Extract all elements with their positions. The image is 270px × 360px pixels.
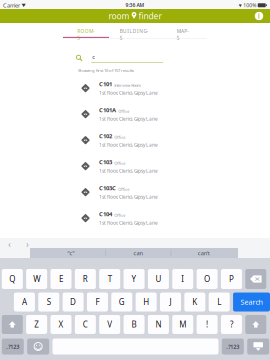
button[interactable]: I — [172, 269, 193, 289]
staticText: A — [22, 297, 27, 307]
staticText: R — [83, 274, 88, 284]
staticText: C102 — [99, 132, 112, 140]
staticText: Showing first 10 of 157 results — [78, 67, 134, 73]
button[interactable]: K — [184, 292, 205, 311]
staticText: 9:36 AM — [125, 2, 144, 9]
button[interactable]: V — [99, 315, 120, 334]
button[interactable]: Search — [233, 292, 270, 311]
staticText: C101A — [99, 106, 116, 114]
button[interactable]: Emoji — [27, 338, 49, 354]
button[interactable]: N — [148, 315, 169, 334]
staticText: C103 — [99, 158, 112, 166]
button[interactable]: X — [50, 315, 71, 334]
staticText: O — [204, 274, 210, 284]
staticText: MAPS — [177, 28, 189, 41]
button[interactable]: G — [111, 292, 132, 311]
button[interactable]: Q — [2, 269, 23, 289]
staticText: 1st floor, Clerici, Gipsy Lane — [99, 220, 158, 226]
staticText: J — [169, 297, 171, 307]
button[interactable]: .?123 — [2, 338, 24, 354]
button[interactable]: ROOMS — [63, 23, 109, 40]
staticText: “c” — [67, 249, 74, 257]
staticText: E — [59, 274, 63, 284]
staticText: BUILDINGS — [120, 28, 148, 41]
button[interactable]: can't — [171, 248, 236, 258]
staticText: C104 — [99, 210, 112, 218]
button[interactable]: ! — [197, 315, 218, 334]
button[interactable]: A — [14, 292, 35, 311]
staticText: U — [155, 274, 161, 284]
button[interactable]: C101 — [0, 75, 270, 101]
button[interactable]: C101A — [0, 101, 270, 127]
staticText: I — [181, 274, 184, 284]
button[interactable]: C104 — [0, 205, 270, 231]
staticText: ROOMS — [77, 28, 95, 41]
button[interactable]: Space — [52, 338, 218, 354]
staticText: i — [258, 12, 260, 20]
button[interactable]: H — [136, 292, 157, 311]
button[interactable]: ? — [221, 315, 242, 334]
staticText: Office — [114, 160, 125, 166]
button[interactable]: Hide keyboard — [247, 338, 269, 354]
button[interactable]: O — [197, 269, 218, 289]
button[interactable]: M — [172, 315, 193, 334]
staticText: C103C — [99, 184, 116, 192]
staticText: T — [108, 274, 112, 284]
button[interactable]: BUILDINGS — [109, 23, 159, 40]
button[interactable]: P — [221, 269, 242, 289]
button[interactable]: E — [50, 269, 71, 289]
staticText: Carrier — [3, 2, 20, 9]
staticText: can't — [198, 249, 210, 257]
button[interactable]: Z — [26, 315, 47, 334]
button[interactable]: Delete — [245, 269, 266, 289]
staticText: Z — [34, 319, 39, 330]
staticText: N — [155, 319, 161, 330]
staticText: 1st floor, Clerici, Gipsy Lane — [99, 168, 158, 174]
staticText: 1st floor, Clerici, Gipsy Lane — [99, 116, 158, 122]
button[interactable]: can — [106, 248, 171, 258]
button[interactable]: Shift — [2, 315, 23, 334]
staticText: C101 — [99, 80, 112, 88]
staticText: S — [47, 297, 51, 307]
button[interactable]: C — [75, 315, 96, 334]
staticText: D — [70, 297, 76, 307]
button[interactable]: U — [148, 269, 169, 289]
staticText: finder — [138, 10, 161, 22]
button[interactable]: F — [87, 292, 108, 311]
button[interactable]: W — [26, 269, 47, 289]
button[interactable]: D — [63, 292, 84, 311]
staticText: 1st floor, Clerici, Gipsy Lane — [99, 142, 158, 148]
staticText: W — [33, 274, 40, 284]
button[interactable]: .?123 — [222, 338, 244, 354]
staticText: 1st floor, Clerici, Gipsy Lane — [99, 90, 158, 96]
staticText: .?123 — [6, 343, 19, 350]
staticText: B — [132, 319, 137, 330]
button[interactable]: C102 — [0, 127, 270, 153]
button[interactable]: C103 — [0, 153, 270, 179]
staticText: ! — [206, 319, 208, 330]
button[interactable]: T — [99, 269, 120, 289]
button[interactable]: L — [209, 292, 230, 311]
staticText: Interview Room — [114, 82, 141, 88]
staticText: ‹ — [8, 238, 11, 250]
button[interactable]: Info — [253, 10, 265, 22]
button[interactable]: C103C — [0, 179, 270, 205]
staticText: .?123 — [226, 343, 239, 350]
button[interactable]: R — [75, 269, 96, 289]
staticText: Office — [114, 212, 125, 218]
button[interactable]: Previous field — [5, 239, 14, 249]
button[interactable]: Next field — [23, 239, 32, 249]
button[interactable]: S — [38, 292, 59, 311]
button[interactable]: Y — [123, 269, 144, 289]
staticText: Y — [132, 274, 137, 284]
button[interactable]: Shift — [245, 315, 266, 334]
button[interactable]: J — [160, 292, 181, 311]
staticText: K — [192, 297, 197, 307]
button[interactable]: B — [123, 315, 144, 334]
staticText: Office — [118, 108, 129, 114]
staticText: can — [134, 249, 143, 257]
button[interactable]: MAPS — [159, 23, 207, 40]
staticText: F — [95, 297, 99, 307]
staticText: Search — [240, 297, 262, 307]
button[interactable]: “c” — [37, 248, 105, 258]
